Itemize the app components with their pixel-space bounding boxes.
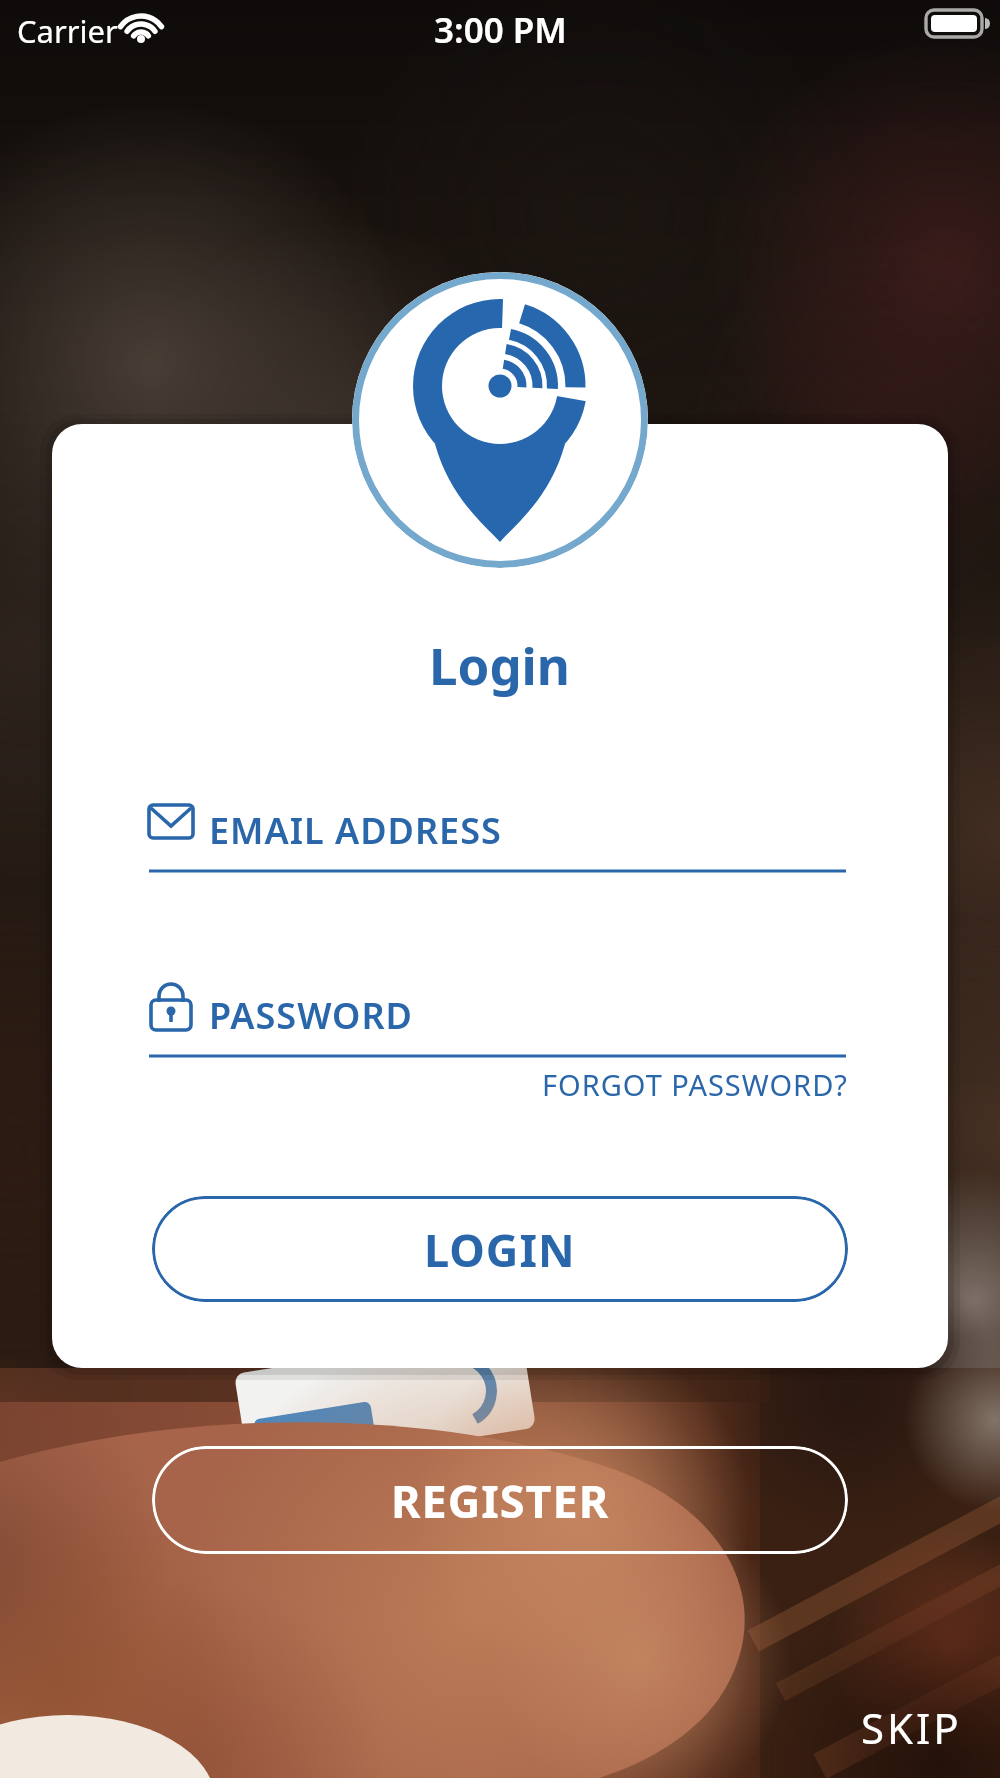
button[interactable]: PASSWORD xyxy=(149,980,846,1058)
button[interactable]: REGISTER xyxy=(152,1446,848,1554)
staticText: Carrier xyxy=(17,10,118,52)
button[interactable]: EMAIL ADDRESS xyxy=(149,795,846,873)
staticText: REGISTER xyxy=(391,1470,610,1531)
staticText: PASSWORD xyxy=(209,991,413,1040)
button[interactable]: SKIP xyxy=(830,1695,980,1759)
button[interactable]: LOGIN xyxy=(152,1196,848,1302)
button[interactable]: FORGOT PASSWORD? xyxy=(400,1060,848,1108)
staticText: SKIP xyxy=(861,1699,962,1756)
staticText: LOGIN xyxy=(424,1219,576,1280)
staticText: 3:00 PM xyxy=(434,6,567,54)
staticText: Login xyxy=(429,630,571,699)
staticText: EMAIL ADDRESS xyxy=(209,806,502,855)
staticText: FORGOT PASSWORD? xyxy=(542,1065,848,1104)
